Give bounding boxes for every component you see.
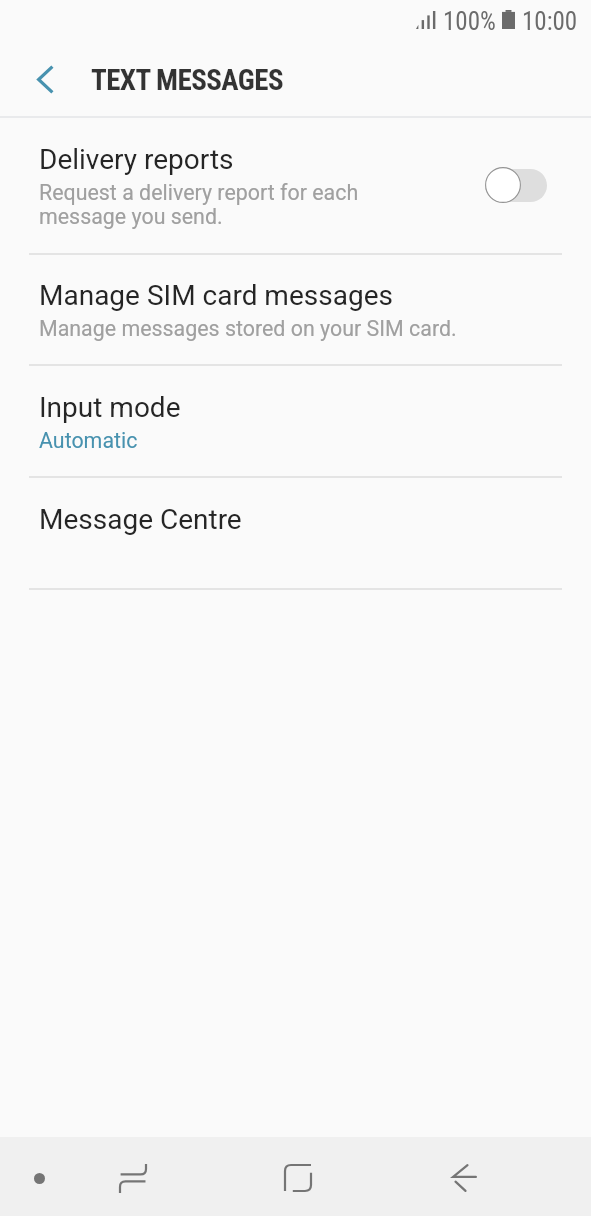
staticText: Request a delivery report for each <box>39 180 359 205</box>
button[interactable]: Input mode <box>0 365 591 477</box>
staticText: Manage SIM card messages <box>39 279 393 312</box>
button[interactable]: Navigate up <box>21 55 69 103</box>
staticText: 100% <box>443 7 496 36</box>
button[interactable]: Recent apps <box>100 1145 166 1211</box>
button[interactable]: Home <box>265 1145 331 1211</box>
button[interactable]: Manage SIM card messages <box>0 253 591 365</box>
staticText: Input mode <box>39 391 181 424</box>
button[interactable]: Delivery reports <box>0 117 591 253</box>
staticText: Delivery reports <box>39 143 234 176</box>
staticText: Manage messages stored on your SIM card. <box>39 316 457 341</box>
staticText: 10:00 <box>522 7 578 36</box>
staticText: Automatic <box>39 428 138 453</box>
button[interactable]: Back <box>431 1145 497 1211</box>
staticText: Message Centre <box>39 503 242 536</box>
button[interactable]: Menu <box>11 1150 67 1206</box>
staticText: TEXT MESSAGES <box>91 63 284 97</box>
staticText: message you send. <box>39 204 223 229</box>
button[interactable]: Message Centre <box>0 477 591 589</box>
